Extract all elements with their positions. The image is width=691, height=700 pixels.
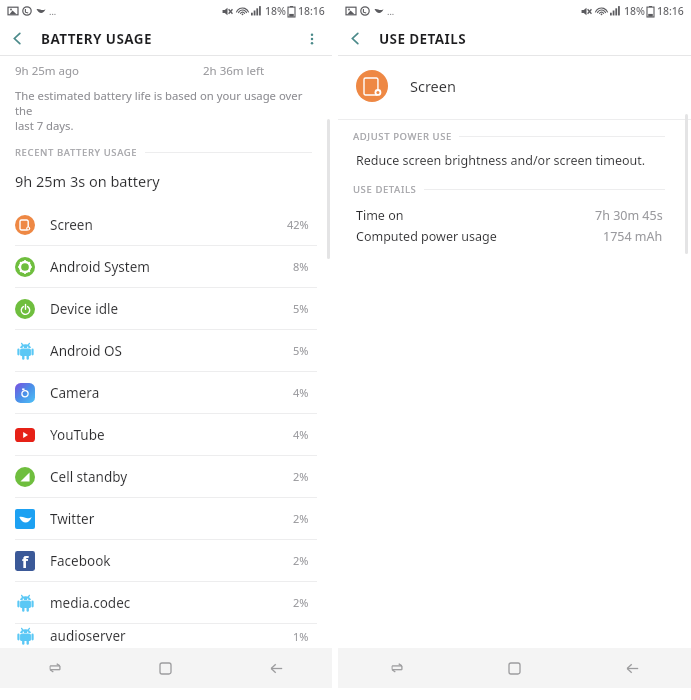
staticText: Twitter	[50, 510, 95, 528]
staticText: Cell standby	[50, 468, 128, 486]
staticText: USE DETAILS	[379, 30, 466, 48]
staticText: 2%	[293, 511, 309, 526]
staticText: RECENT BATTERY USAGE	[15, 146, 138, 159]
staticText: 9h 25m 3s on battery	[15, 171, 160, 191]
button[interactable]: Home	[455, 648, 573, 688]
staticText: BATTERY USAGE	[41, 30, 152, 48]
button[interactable]: Back	[338, 22, 372, 55]
button[interactable]: audioserver	[0, 624, 332, 648]
staticText: 8%	[293, 259, 309, 274]
staticText: 1754 mAh	[603, 228, 663, 245]
staticText: 7h 30m 45s	[595, 207, 663, 224]
button[interactable]: media.codec	[0, 582, 332, 624]
button[interactable]: Cell standby	[0, 456, 332, 498]
button[interactable]: YouTube	[0, 414, 332, 456]
button[interactable]: Back	[221, 648, 332, 688]
staticText: Android System	[50, 258, 150, 276]
button[interactable]: Android System	[0, 246, 332, 288]
staticText: Reduce screen brightness and/or screen t…	[356, 152, 646, 169]
staticText: Time on	[356, 207, 404, 224]
button[interactable]: Android OS	[0, 330, 332, 372]
staticText: 18:16	[657, 4, 684, 18]
button[interactable]: Twitter	[0, 498, 332, 540]
button[interactable]: f	[0, 540, 332, 582]
staticText: 2%	[293, 469, 309, 484]
button[interactable]: Back	[0, 22, 34, 55]
button[interactable]: Device idle	[0, 288, 332, 330]
button[interactable]: Camera	[0, 372, 332, 414]
staticText: 1%	[293, 629, 309, 644]
staticText: Screen	[50, 216, 93, 234]
staticText: Facebook	[50, 552, 111, 570]
button[interactable]: Recents	[0, 648, 110, 688]
staticText: audioserver	[50, 627, 126, 645]
staticText: Android OS	[50, 342, 122, 360]
staticText: USE DETAILS	[353, 183, 417, 196]
staticText: The estimated battery life is based on y…	[15, 88, 317, 133]
staticText: 18%	[265, 4, 286, 18]
button[interactable]: Recents	[338, 648, 455, 688]
staticText: 4%	[293, 385, 309, 400]
button[interactable]: More options	[295, 22, 329, 55]
staticText: 42%	[287, 217, 309, 232]
staticText: f	[22, 551, 29, 571]
button[interactable]: Screen	[0, 204, 332, 246]
staticText: 4%	[293, 427, 309, 442]
staticText: 2%	[293, 553, 309, 568]
staticText: ...	[387, 5, 395, 17]
button[interactable]: Home	[110, 648, 221, 688]
staticText: Screen	[410, 76, 456, 96]
button[interactable]: Back	[573, 648, 691, 688]
staticText: ADJUST POWER USE	[353, 130, 452, 143]
staticText: 2%	[293, 595, 309, 610]
staticText: 2h 36m left	[203, 63, 265, 79]
staticText: 9h 25m ago	[15, 63, 80, 79]
staticText: Camera	[50, 384, 100, 402]
staticText: 5%	[293, 343, 309, 358]
staticText: 5%	[293, 301, 309, 316]
staticText: ...	[49, 5, 57, 17]
staticText: media.codec	[50, 594, 131, 612]
staticText: Computed power usage	[356, 228, 497, 245]
staticText: 18:16	[298, 4, 325, 18]
staticText: YouTube	[50, 426, 105, 444]
staticText: 18%	[624, 4, 645, 18]
staticText: Device idle	[50, 300, 119, 318]
